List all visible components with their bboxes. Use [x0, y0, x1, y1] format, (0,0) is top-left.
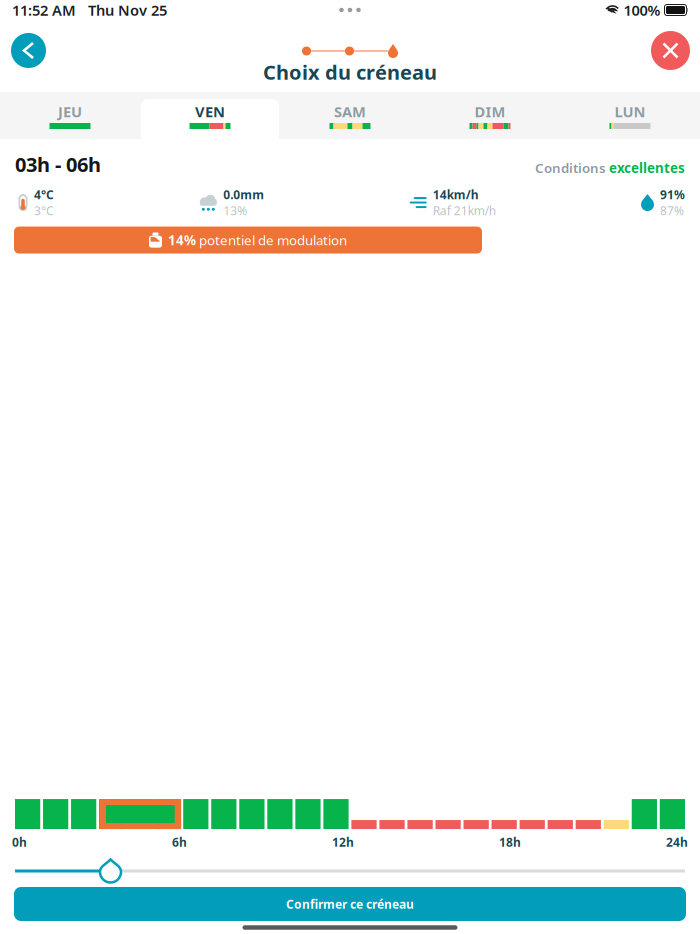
button[interactable]: DIM: [420, 92, 560, 139]
staticText: 12h: [332, 834, 354, 850]
staticText: 0h: [12, 834, 27, 850]
staticText: 6h: [172, 834, 187, 850]
button[interactable]: Confirmer ce créneau: [14, 887, 686, 921]
staticText: 87%: [660, 203, 684, 218]
staticText: 03h - 06h: [15, 151, 101, 178]
button[interactable]: 14%: [14, 227, 482, 254]
staticText: 24h: [666, 834, 688, 850]
staticText: SAM: [334, 102, 366, 121]
staticText: Conditions: [535, 159, 609, 177]
staticText: VEN: [195, 102, 225, 121]
staticText: 11:52 AM: [12, 0, 76, 20]
staticText: JEU: [58, 102, 82, 121]
staticText: Thu Nov 25: [76, 0, 167, 20]
staticText: 18h: [499, 834, 521, 850]
staticText: LUN: [614, 102, 645, 121]
staticText: excellentes: [609, 159, 685, 177]
staticText: 91%: [660, 187, 685, 202]
staticText: 0.0mm: [223, 187, 264, 202]
button[interactable]: Retour: [6, 28, 51, 73]
button[interactable]: SAM: [280, 92, 420, 139]
staticText: Choix du créneau: [263, 59, 437, 85]
staticText: 13%: [223, 203, 247, 218]
staticText: Raf 21km/h: [433, 203, 496, 218]
staticText: 100%: [619, 0, 664, 20]
staticText: Confirmer ce créneau: [286, 896, 414, 912]
staticText: 14km/h: [433, 187, 479, 202]
button[interactable]: Fermer: [646, 26, 695, 75]
staticText: 3°C: [34, 203, 54, 218]
staticText: DIM: [474, 102, 505, 121]
button[interactable]: JEU: [0, 92, 140, 139]
button[interactable]: VEN: [140, 92, 280, 139]
staticText: potentiel de modulation: [199, 231, 347, 249]
staticText: 4°C: [34, 187, 54, 202]
staticText: 14%: [162, 231, 199, 249]
button[interactable]: LUN: [560, 92, 700, 139]
